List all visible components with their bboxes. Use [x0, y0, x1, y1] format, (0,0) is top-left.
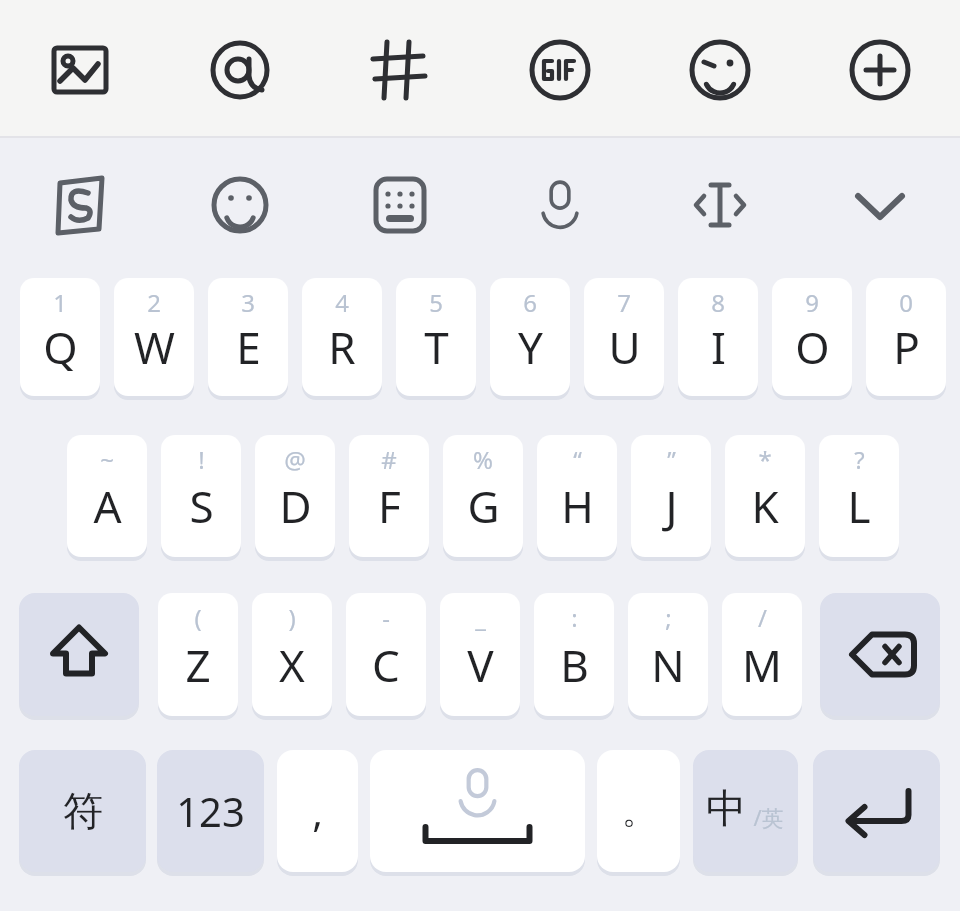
button[interactable]: 符: [19, 750, 146, 872]
staticText: Z: [185, 635, 211, 695]
staticText: ,: [312, 784, 323, 838]
staticText: J: [665, 476, 678, 536]
button[interactable]: %: [443, 435, 523, 557]
staticText: ”: [667, 443, 676, 476]
button[interactable]: Enter: [813, 750, 940, 872]
button[interactable]: /: [722, 593, 802, 716]
button[interactable]: 3: [208, 278, 288, 396]
staticText: /英: [753, 802, 784, 832]
staticText: @: [284, 443, 306, 476]
staticText: U: [608, 317, 641, 377]
button[interactable]: Emoticons: [204, 169, 276, 241]
staticText: 6: [523, 286, 537, 319]
staticText: T: [424, 317, 449, 377]
button[interactable]: ~: [67, 435, 147, 557]
button[interactable]: (: [158, 593, 238, 716]
staticText: O: [795, 317, 830, 377]
button[interactable]: More: [844, 34, 916, 106]
button[interactable]: 。: [597, 750, 680, 872]
staticText: 123: [176, 784, 245, 838]
staticText: I: [711, 317, 726, 377]
button[interactable]: Image: [44, 34, 116, 106]
staticText: ~: [100, 443, 114, 476]
button[interactable]: ): [252, 593, 332, 716]
staticText: Y: [518, 317, 543, 377]
button[interactable]: -: [346, 593, 426, 716]
staticText: M: [742, 635, 782, 695]
staticText: (: [194, 601, 202, 634]
staticText: ;: [665, 601, 672, 634]
staticText: E: [236, 317, 261, 377]
button[interactable]: Sogou input settings: [44, 169, 116, 241]
button[interactable]: #: [349, 435, 429, 557]
button[interactable]: *: [725, 435, 805, 557]
button[interactable]: Keyboard layout: [364, 169, 436, 241]
staticText: K: [751, 476, 779, 536]
button[interactable]: Backspace: [820, 593, 940, 716]
staticText: Q: [43, 317, 78, 377]
staticText: 4: [335, 286, 349, 319]
staticText: :: [571, 601, 578, 634]
button[interactable]: 4: [302, 278, 382, 396]
staticText: -: [382, 601, 390, 634]
staticText: 。: [622, 790, 656, 833]
button[interactable]: Voice input: [524, 169, 596, 241]
staticText: V: [467, 635, 494, 695]
staticText: B: [560, 635, 589, 695]
staticText: ): [288, 601, 296, 634]
staticText: C: [372, 635, 400, 695]
button[interactable]: 123: [157, 750, 264, 872]
staticText: %: [473, 443, 493, 476]
button[interactable]: 9: [772, 278, 852, 396]
staticText: D: [279, 476, 312, 536]
button[interactable]: Hide keyboard: [844, 169, 916, 241]
staticText: 7: [617, 286, 631, 319]
staticText: L: [847, 476, 871, 536]
staticText: 2: [147, 286, 161, 319]
button[interactable]: ?: [819, 435, 899, 557]
button[interactable]: 2: [114, 278, 194, 396]
staticText: 3: [241, 286, 255, 319]
button[interactable]: “: [537, 435, 617, 557]
button[interactable]: 1: [20, 278, 100, 396]
staticText: P: [893, 317, 920, 377]
button[interactable]: @: [255, 435, 335, 557]
staticText: !: [198, 443, 205, 476]
staticText: ?: [854, 443, 865, 476]
button[interactable]: Move cursor: [684, 169, 756, 241]
staticText: R: [328, 317, 356, 377]
button[interactable]: ,: [277, 750, 358, 872]
staticText: 9: [805, 286, 819, 319]
staticText: S: [189, 476, 214, 536]
button[interactable]: Mention: [204, 34, 276, 106]
button[interactable]: GIF: [524, 34, 596, 106]
button[interactable]: 7: [584, 278, 664, 396]
button[interactable]: 8: [678, 278, 758, 396]
button[interactable]: 6: [490, 278, 570, 396]
button[interactable]: Shift: [19, 593, 139, 716]
button[interactable]: _: [440, 593, 520, 716]
button[interactable]: Hashtag: [364, 34, 436, 106]
button[interactable]: :: [534, 593, 614, 716]
staticText: W: [134, 317, 175, 377]
staticText: 0: [899, 286, 913, 319]
staticText: X: [279, 635, 305, 695]
staticText: 符: [63, 786, 103, 836]
staticText: “: [573, 443, 582, 476]
staticText: *: [758, 443, 772, 476]
button[interactable]: 0: [866, 278, 946, 396]
staticText: 5: [429, 286, 443, 319]
staticText: H: [561, 476, 594, 536]
button[interactable]: Emoji: [684, 34, 756, 106]
button[interactable]: ”: [631, 435, 711, 557]
button[interactable]: 5: [396, 278, 476, 396]
staticText: 中: [706, 783, 746, 833]
staticText: 1: [53, 286, 67, 319]
staticText: 8: [711, 286, 725, 319]
button[interactable]: Space: [370, 750, 585, 872]
staticText: /: [758, 601, 767, 634]
staticText: A: [93, 476, 122, 536]
button[interactable]: !: [161, 435, 241, 557]
button[interactable]: ;: [628, 593, 708, 716]
button[interactable]: Switch Chinese English: [693, 750, 798, 872]
